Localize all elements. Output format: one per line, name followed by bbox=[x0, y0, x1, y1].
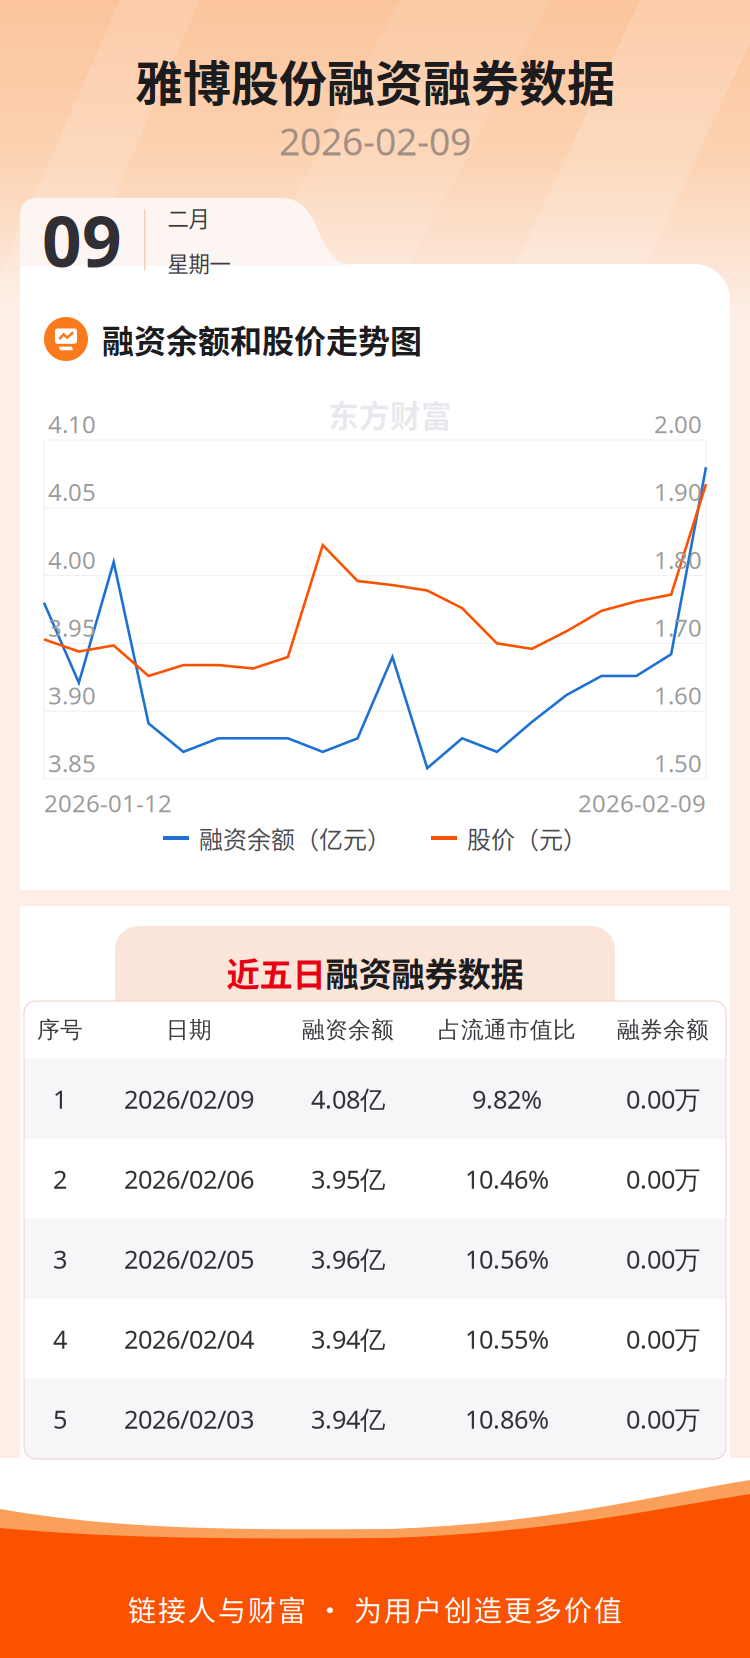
staticText: 链接人与财富 · 为用户创造更多价值 bbox=[128, 1589, 622, 1629]
staticText: 3.90 bbox=[48, 679, 96, 711]
staticText: 雅博股份融资融券数据 bbox=[135, 45, 615, 115]
staticText: 0.00万 bbox=[626, 1322, 700, 1356]
staticText: 2026/02/09 bbox=[124, 1082, 254, 1116]
button[interactable]: 1 bbox=[24, 1059, 726, 1139]
staticText: 2.00 bbox=[654, 408, 702, 440]
staticText: 3.94亿 bbox=[311, 1322, 385, 1356]
staticText: 0.00万 bbox=[626, 1402, 700, 1436]
staticText: 0.00万 bbox=[626, 1162, 700, 1196]
button[interactable]: 融资余额（亿元） bbox=[163, 818, 391, 858]
staticText: 2026/02/05 bbox=[124, 1242, 254, 1276]
staticText: 1.70 bbox=[654, 611, 702, 643]
staticText: 日期 bbox=[166, 1016, 212, 1044]
staticText: 1.60 bbox=[654, 679, 702, 711]
staticText: 10.86% bbox=[465, 1402, 549, 1436]
staticText: 1.50 bbox=[654, 747, 702, 779]
staticText: 序号 bbox=[37, 1016, 83, 1044]
staticText: 东方财富 bbox=[328, 392, 452, 436]
staticText: 1.80 bbox=[654, 544, 702, 576]
staticText: 3.96亿 bbox=[311, 1242, 385, 1276]
staticText: 4 bbox=[53, 1322, 67, 1356]
staticText: 1 bbox=[53, 1082, 67, 1116]
button[interactable]: 5 bbox=[24, 1379, 726, 1459]
staticText: 融资融券数据 bbox=[325, 948, 523, 996]
staticText: 星期一 bbox=[167, 247, 230, 278]
staticText: 占流通市值比 bbox=[438, 1016, 576, 1044]
staticText: 2026-02-09 bbox=[279, 116, 471, 166]
button[interactable]: 股价（元） bbox=[431, 818, 587, 858]
staticText: 10.55% bbox=[465, 1322, 549, 1356]
staticText: 融资余额 bbox=[302, 1016, 394, 1044]
staticText: 4.00 bbox=[48, 544, 96, 576]
staticText: 3.94亿 bbox=[311, 1402, 385, 1436]
staticText: 1.90 bbox=[654, 476, 702, 508]
staticText: 3 bbox=[53, 1242, 67, 1276]
staticText: 2 bbox=[53, 1162, 67, 1196]
staticText: 4.05 bbox=[48, 476, 96, 508]
button[interactable]: 3 bbox=[24, 1219, 726, 1299]
staticText: 股价（元） bbox=[467, 821, 587, 855]
staticText: 4.10 bbox=[48, 408, 96, 440]
staticText: 4.08亿 bbox=[311, 1082, 385, 1116]
staticText: 2026/02/03 bbox=[124, 1402, 254, 1436]
staticText: 融资余额（亿元） bbox=[199, 821, 391, 855]
staticText: 2026-01-12 bbox=[44, 787, 172, 819]
staticText: 10.46% bbox=[465, 1162, 549, 1196]
staticText: 09 bbox=[42, 193, 122, 287]
staticText: 0.00万 bbox=[626, 1082, 700, 1116]
staticText: 2026/02/06 bbox=[124, 1162, 254, 1196]
staticText: 2026-02-09 bbox=[578, 787, 706, 819]
button[interactable]: 融资余额和股价走势图 bbox=[44, 316, 704, 362]
button[interactable]: 2 bbox=[24, 1139, 726, 1219]
staticText: 10.56% bbox=[465, 1242, 549, 1276]
staticText: 5 bbox=[53, 1402, 67, 1436]
staticText: 9.82% bbox=[472, 1082, 542, 1116]
staticText: 二月 bbox=[167, 202, 209, 233]
staticText: 2026/02/04 bbox=[124, 1322, 254, 1356]
staticText: 融资余额和股价走势图 bbox=[102, 316, 422, 362]
staticText: 3.85 bbox=[48, 747, 96, 779]
staticText: 融券余额 bbox=[617, 1016, 709, 1044]
staticText: 近五日 bbox=[226, 948, 325, 996]
staticText: 3.95亿 bbox=[311, 1162, 385, 1196]
staticText: 0.00万 bbox=[626, 1242, 700, 1276]
staticText: 3.95 bbox=[48, 611, 96, 643]
button[interactable]: 4 bbox=[24, 1299, 726, 1379]
